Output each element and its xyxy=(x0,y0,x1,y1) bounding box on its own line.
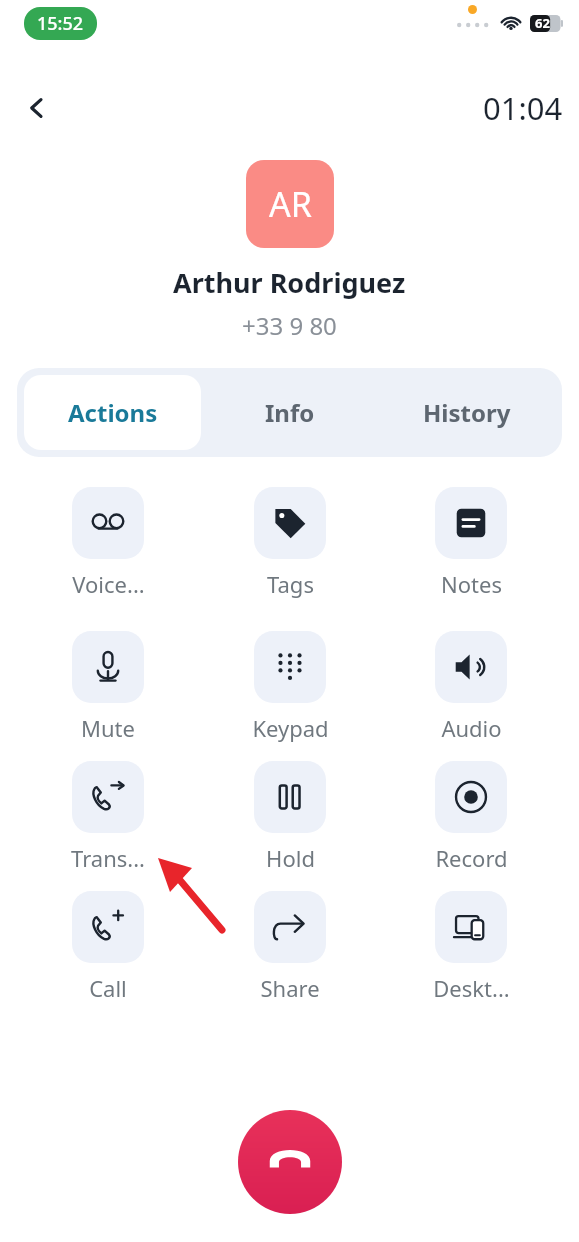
staticText: 62 xyxy=(535,14,550,32)
button[interactable]: Notes xyxy=(423,487,519,599)
button[interactable]: Record xyxy=(423,761,519,873)
staticText: +33 9 80 xyxy=(242,309,337,342)
button[interactable]: Tags xyxy=(242,487,338,599)
button[interactable]: Back xyxy=(14,85,60,131)
staticText: Actions xyxy=(68,396,158,429)
button[interactable]: Mute xyxy=(60,631,156,743)
button[interactable]: Transfer xyxy=(60,761,156,873)
staticText: Hold xyxy=(266,843,315,873)
button[interactable]: Add call xyxy=(60,891,156,1003)
staticText: AR xyxy=(269,181,312,227)
staticText: Voice... xyxy=(72,569,145,599)
button[interactable]: Desktop xyxy=(423,891,519,1003)
staticText: Mute xyxy=(81,713,135,743)
button[interactable]: Share xyxy=(242,891,338,1003)
staticText: History xyxy=(423,396,511,429)
staticText: 01:04 xyxy=(483,87,563,129)
button[interactable]: Hold xyxy=(242,761,338,873)
staticText: Share xyxy=(260,973,320,1003)
button[interactable]: History xyxy=(378,375,555,450)
staticText: Trans... xyxy=(71,843,145,873)
staticText: Call xyxy=(89,973,127,1003)
staticText: Deskt... xyxy=(433,973,510,1003)
button[interactable]: Keypad xyxy=(242,631,338,743)
staticText: Tags xyxy=(267,569,314,599)
button[interactable]: End call xyxy=(238,1110,342,1214)
staticText: Notes xyxy=(441,569,502,599)
button[interactable]: Actions xyxy=(24,375,201,450)
button[interactable]: Voicemail xyxy=(60,487,156,599)
staticText: Record xyxy=(435,843,508,873)
button[interactable]: Audio xyxy=(423,631,519,743)
staticText: 15:52 xyxy=(37,11,84,36)
staticText: Keypad xyxy=(252,713,329,743)
staticText: Arthur Rodriguez xyxy=(173,264,406,301)
staticText: Info xyxy=(265,396,315,429)
staticText: Audio xyxy=(441,713,502,743)
button[interactable]: Info xyxy=(201,375,378,450)
